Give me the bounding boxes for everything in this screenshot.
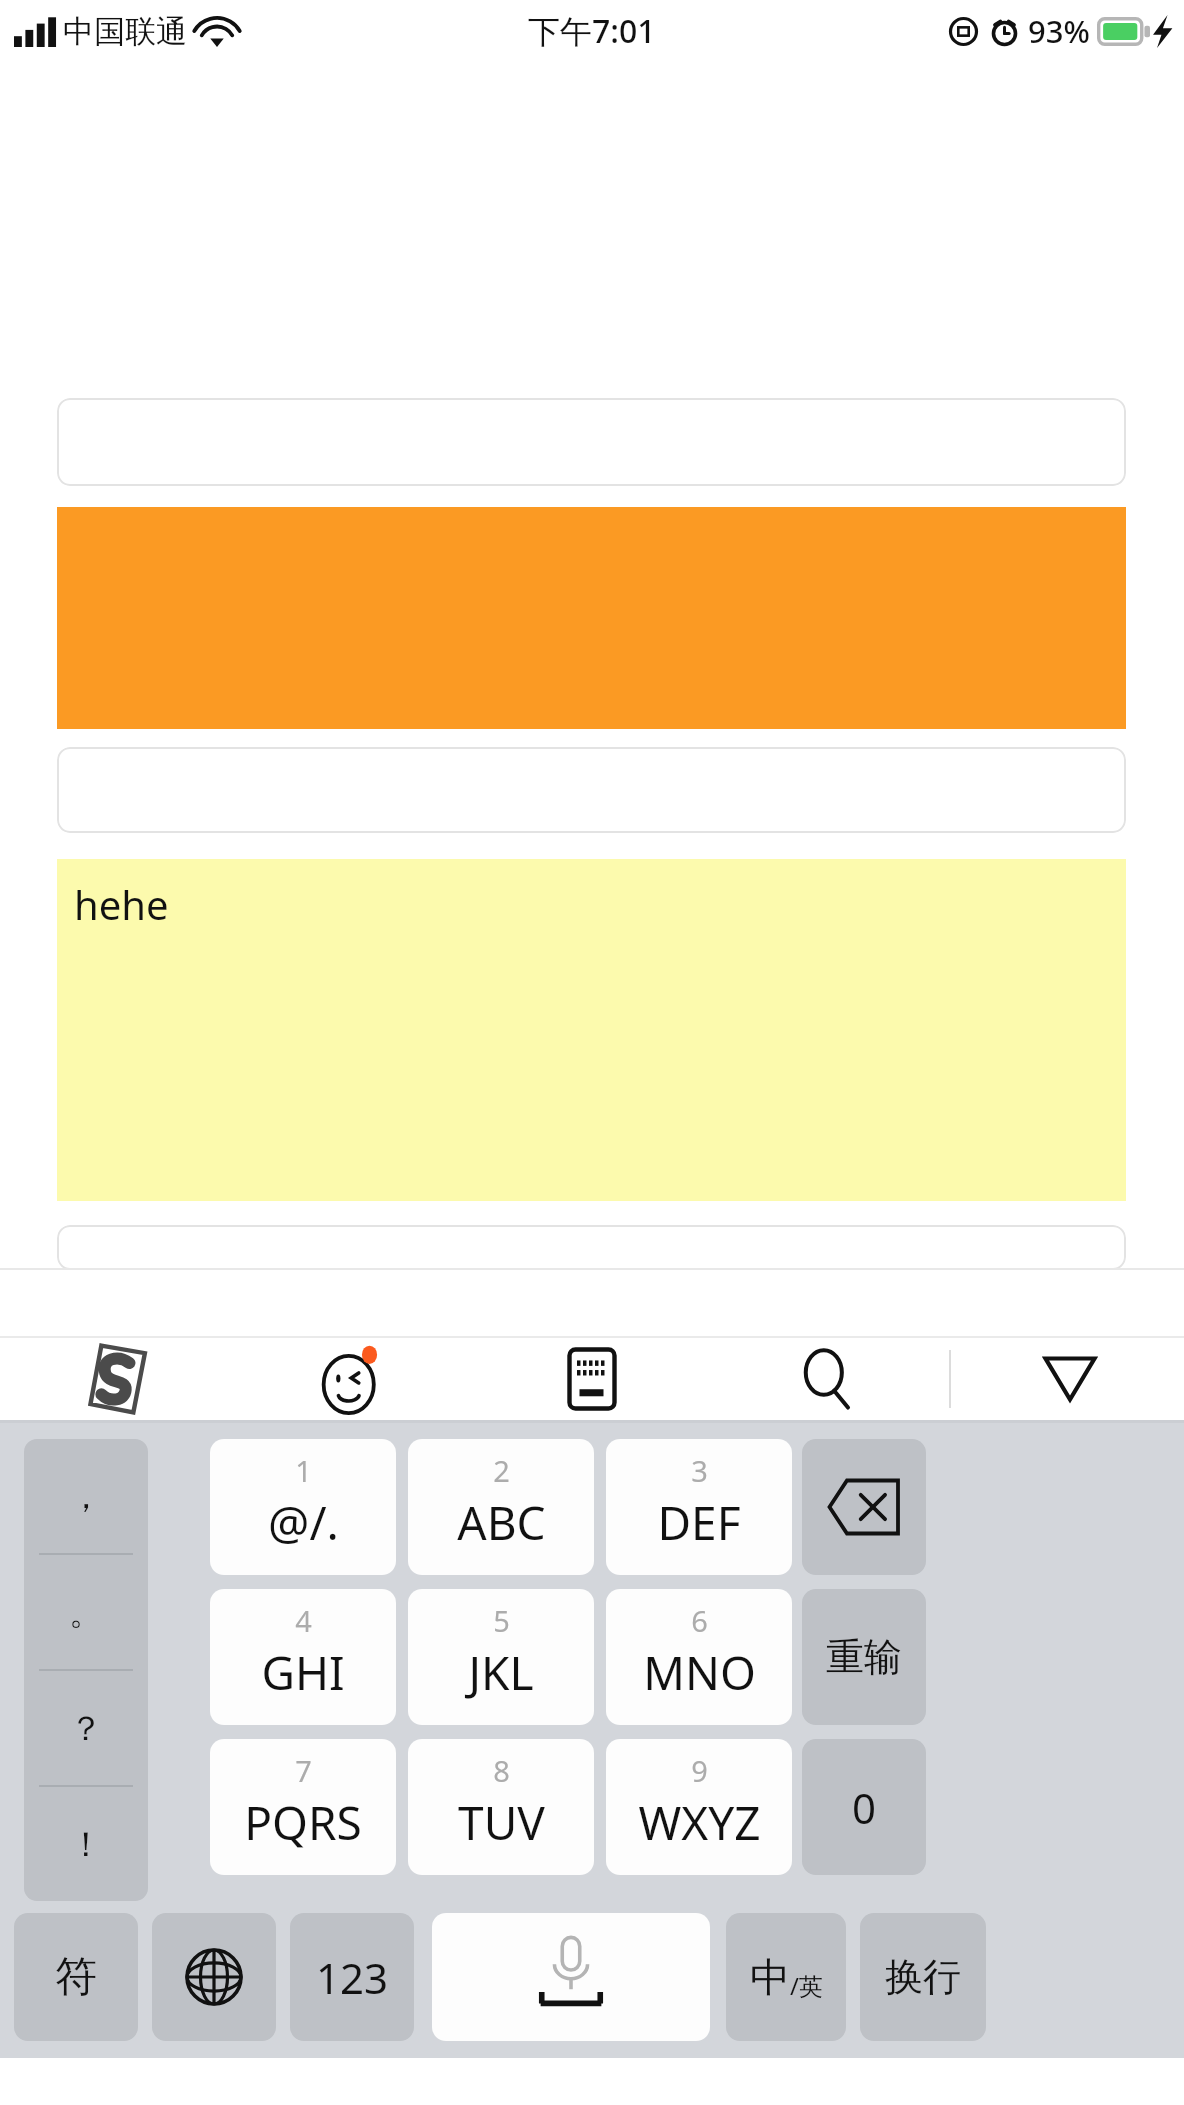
button[interactable]: ， [24,1439,148,1901]
button[interactable]: 7 [210,1739,396,1875]
button[interactable]: 1 [210,1439,396,1575]
button[interactable]: 0 [802,1739,926,1875]
button[interactable]: Keyboard layout [542,1338,642,1420]
staticText: 中国联通 [63,12,187,51]
button[interactable]: Search [778,1338,878,1420]
button[interactable]: 中 [726,1913,846,2041]
staticText: 符 [55,1951,97,2004]
staticText: /英 [790,1969,823,2002]
button[interactable]: 符 [14,1913,138,2041]
button[interactable]: Hide keyboard [1020,1338,1120,1420]
staticText: MNO [643,1641,756,1704]
button[interactable]: Space [432,1913,710,2041]
staticText: 中 [750,1952,790,2002]
staticText: 7 [295,1751,312,1790]
button[interactable] [57,747,1126,833]
staticText: ！ [69,1823,103,1866]
button[interactable]: 3 [606,1439,792,1575]
staticText: 9 [691,1751,708,1790]
staticText: 93% [1028,10,1090,52]
button[interactable] [57,1225,1126,1270]
staticText: 1 [295,1451,312,1490]
staticText: @/. [268,1491,339,1554]
staticText: 6 [691,1601,708,1640]
staticText: 重输 [826,1633,902,1681]
staticText: 2 [493,1451,510,1490]
button[interactable]: Backspace [802,1439,926,1575]
staticText: ， [69,1475,103,1518]
button[interactable]: 2 [408,1439,594,1575]
button[interactable]: 8 [408,1739,594,1875]
button[interactable]: 4 [210,1589,396,1725]
button[interactable]: 重输 [802,1589,926,1725]
staticText: 下午7:01 [528,9,656,53]
staticText: hehe [74,877,169,931]
staticText: ？ [69,1707,103,1750]
staticText: PQRS [244,1791,362,1854]
staticText: 5 [493,1601,510,1640]
staticText: 8 [493,1751,510,1790]
staticText: 换行 [885,1953,961,2001]
button[interactable]: Switch language [152,1913,276,2041]
button[interactable]: Emoji [304,1338,404,1420]
staticText: TUV [458,1791,545,1854]
staticText: 3 [691,1451,708,1490]
button[interactable]: 5 [408,1589,594,1725]
button[interactable]: hehe [57,859,1126,1201]
staticText: GHI [261,1641,345,1704]
staticText: 4 [295,1601,312,1640]
staticText: 0 [852,1779,877,1836]
staticText: DEF [657,1491,741,1554]
staticText: 。 [69,1591,103,1634]
button[interactable]: 换行 [860,1913,986,2041]
button[interactable]: 9 [606,1739,792,1875]
button[interactable]: Sogou input [68,1338,168,1420]
staticText: WXYZ [638,1791,761,1854]
staticText: ABC [457,1491,546,1554]
staticText: JKL [468,1641,534,1704]
button[interactable]: 6 [606,1589,792,1725]
button[interactable]: 123 [290,1913,414,2041]
staticText: 123 [316,1949,389,2006]
button[interactable] [57,398,1126,486]
